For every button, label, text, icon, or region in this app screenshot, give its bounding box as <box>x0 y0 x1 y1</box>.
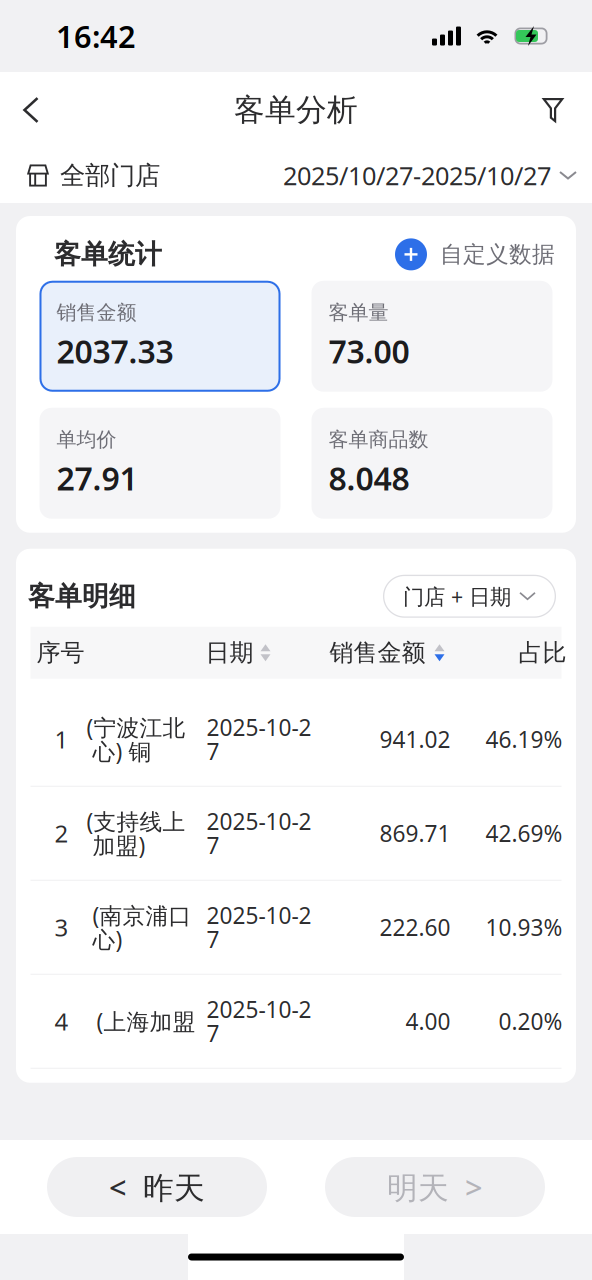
staticText: 销售金额 <box>329 638 425 667</box>
button[interactable]: 自定义数据 <box>395 238 555 270</box>
staticText: 941.02 <box>379 724 450 754</box>
button[interactable]: 客单量 <box>311 281 552 392</box>
staticText: 7 <box>206 736 219 766</box>
staticText: 42.69% <box>485 818 562 848</box>
staticText: 2 <box>54 817 68 849</box>
staticText: 序号 <box>36 638 84 667</box>
staticText: 2025-10-2 <box>206 712 311 742</box>
staticText: 心) 铜 <box>92 736 151 766</box>
staticText: < 昨天 <box>109 1167 205 1207</box>
staticText: 自定义数据 <box>440 240 555 268</box>
staticText: 46.19% <box>485 724 562 754</box>
staticText: 10.93% <box>485 912 562 942</box>
staticText: 单均价 <box>56 427 116 452</box>
button[interactable]: 门店 + 日期 <box>383 575 556 618</box>
staticText: 全部门店 <box>60 160 160 191</box>
button[interactable]: 全部门店 <box>27 150 160 200</box>
button[interactable]: < 昨天 <box>47 1157 267 1217</box>
staticText: 7 <box>206 924 219 954</box>
staticText: 客单量 <box>328 300 388 325</box>
staticText: 73.00 <box>328 330 409 372</box>
staticText: 1 <box>54 723 68 755</box>
button[interactable]: 明天 > <box>325 1157 545 1217</box>
button[interactable]: 筛选 <box>526 79 580 141</box>
staticText: 8.048 <box>328 457 409 499</box>
staticText: 7 <box>206 830 219 860</box>
staticText: 门店 + 日期 <box>403 582 511 610</box>
staticText: 4 <box>54 1005 68 1037</box>
staticText: 销售金额 <box>56 300 136 325</box>
staticText: 占比 <box>518 638 566 667</box>
staticText: 客单分析 <box>234 91 358 129</box>
staticText: 客单统计 <box>54 238 162 271</box>
staticText: 3 <box>54 911 68 943</box>
staticText: (上海加盟 <box>96 1006 195 1036</box>
staticText: 日期 <box>205 638 253 667</box>
staticText: 客单商品数 <box>328 427 428 452</box>
staticText: 4.00 <box>405 1006 450 1036</box>
staticText: 2025-10-2 <box>206 994 311 1024</box>
staticText: 0.20% <box>498 1006 562 1036</box>
staticText: 7 <box>206 1018 219 1048</box>
button[interactable]: 客单商品数 <box>311 408 552 519</box>
button[interactable]: 2025/10/27-2025/10/27 <box>283 150 577 200</box>
staticText: (支持线上 <box>86 806 185 836</box>
staticText: 2037.33 <box>56 330 173 372</box>
staticText: 客单明细 <box>28 580 136 613</box>
button[interactable]: 返回 <box>4 79 58 141</box>
staticText: 222.60 <box>379 912 450 942</box>
staticText: 27.91 <box>56 457 137 499</box>
staticText: 2025/10/27-2025/10/27 <box>283 159 551 192</box>
staticText: 明天 > <box>387 1167 483 1207</box>
staticText: (南京浦口 <box>92 900 191 930</box>
button[interactable]: 销售金额 <box>39 281 280 392</box>
staticText: (宁波江北 <box>86 712 185 742</box>
button[interactable]: 单均价 <box>39 408 280 519</box>
staticText: 16:42 <box>56 16 136 56</box>
staticText: 869.71 <box>379 818 450 848</box>
staticText: 加盟) <box>92 830 145 860</box>
staticText: 2025-10-2 <box>206 900 311 930</box>
staticText: 心) <box>92 924 122 954</box>
staticText: 2025-10-2 <box>206 806 311 836</box>
